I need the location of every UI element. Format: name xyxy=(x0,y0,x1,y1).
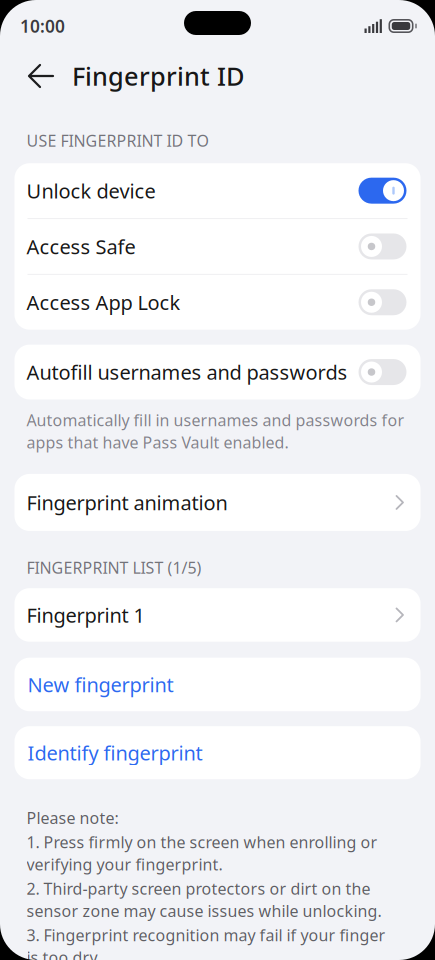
staticText: Fingerprint 1 xyxy=(26,602,144,628)
staticText: Identify fingerprint xyxy=(27,739,202,766)
staticText: Autofill usernames and passwords xyxy=(26,359,347,385)
button[interactable]: Back xyxy=(0,64,54,88)
staticText: Fingerprint animation xyxy=(26,489,227,516)
staticText: 10:00 xyxy=(20,14,65,37)
button[interactable]: Identify fingerprint xyxy=(14,726,420,779)
button[interactable]: Fingerprint animation xyxy=(14,474,420,531)
button[interactable]: New fingerprint xyxy=(14,658,420,711)
staticText: 1. Press firmly on the screen when enrol… xyxy=(26,831,377,875)
staticText: Please note: xyxy=(26,807,118,828)
button[interactable]: Autofill usernames and passwords xyxy=(358,359,406,385)
button[interactable]: Access Safe xyxy=(358,233,406,259)
staticText: Unlock device xyxy=(26,177,155,204)
staticText: USE FINGERPRINT ID TO xyxy=(26,130,208,151)
staticText: Access Safe xyxy=(26,233,135,260)
button[interactable]: Fingerprint 1 xyxy=(14,588,420,642)
button[interactable]: Access App Lock xyxy=(358,289,406,315)
staticText: Automatically fill in usernames and pass… xyxy=(26,409,404,453)
staticText: Access App Lock xyxy=(26,289,180,316)
staticText: New fingerprint xyxy=(27,671,173,698)
staticText: FINGERPRINT LIST (1/5) xyxy=(26,557,201,578)
staticText: 3. Fingerprint recognition may fail if y… xyxy=(26,924,385,960)
staticText: 2. Third-party screen protectors or dirt… xyxy=(26,878,381,921)
button[interactable]: Unlock device xyxy=(358,178,406,204)
staticText: Fingerprint ID xyxy=(72,59,245,93)
